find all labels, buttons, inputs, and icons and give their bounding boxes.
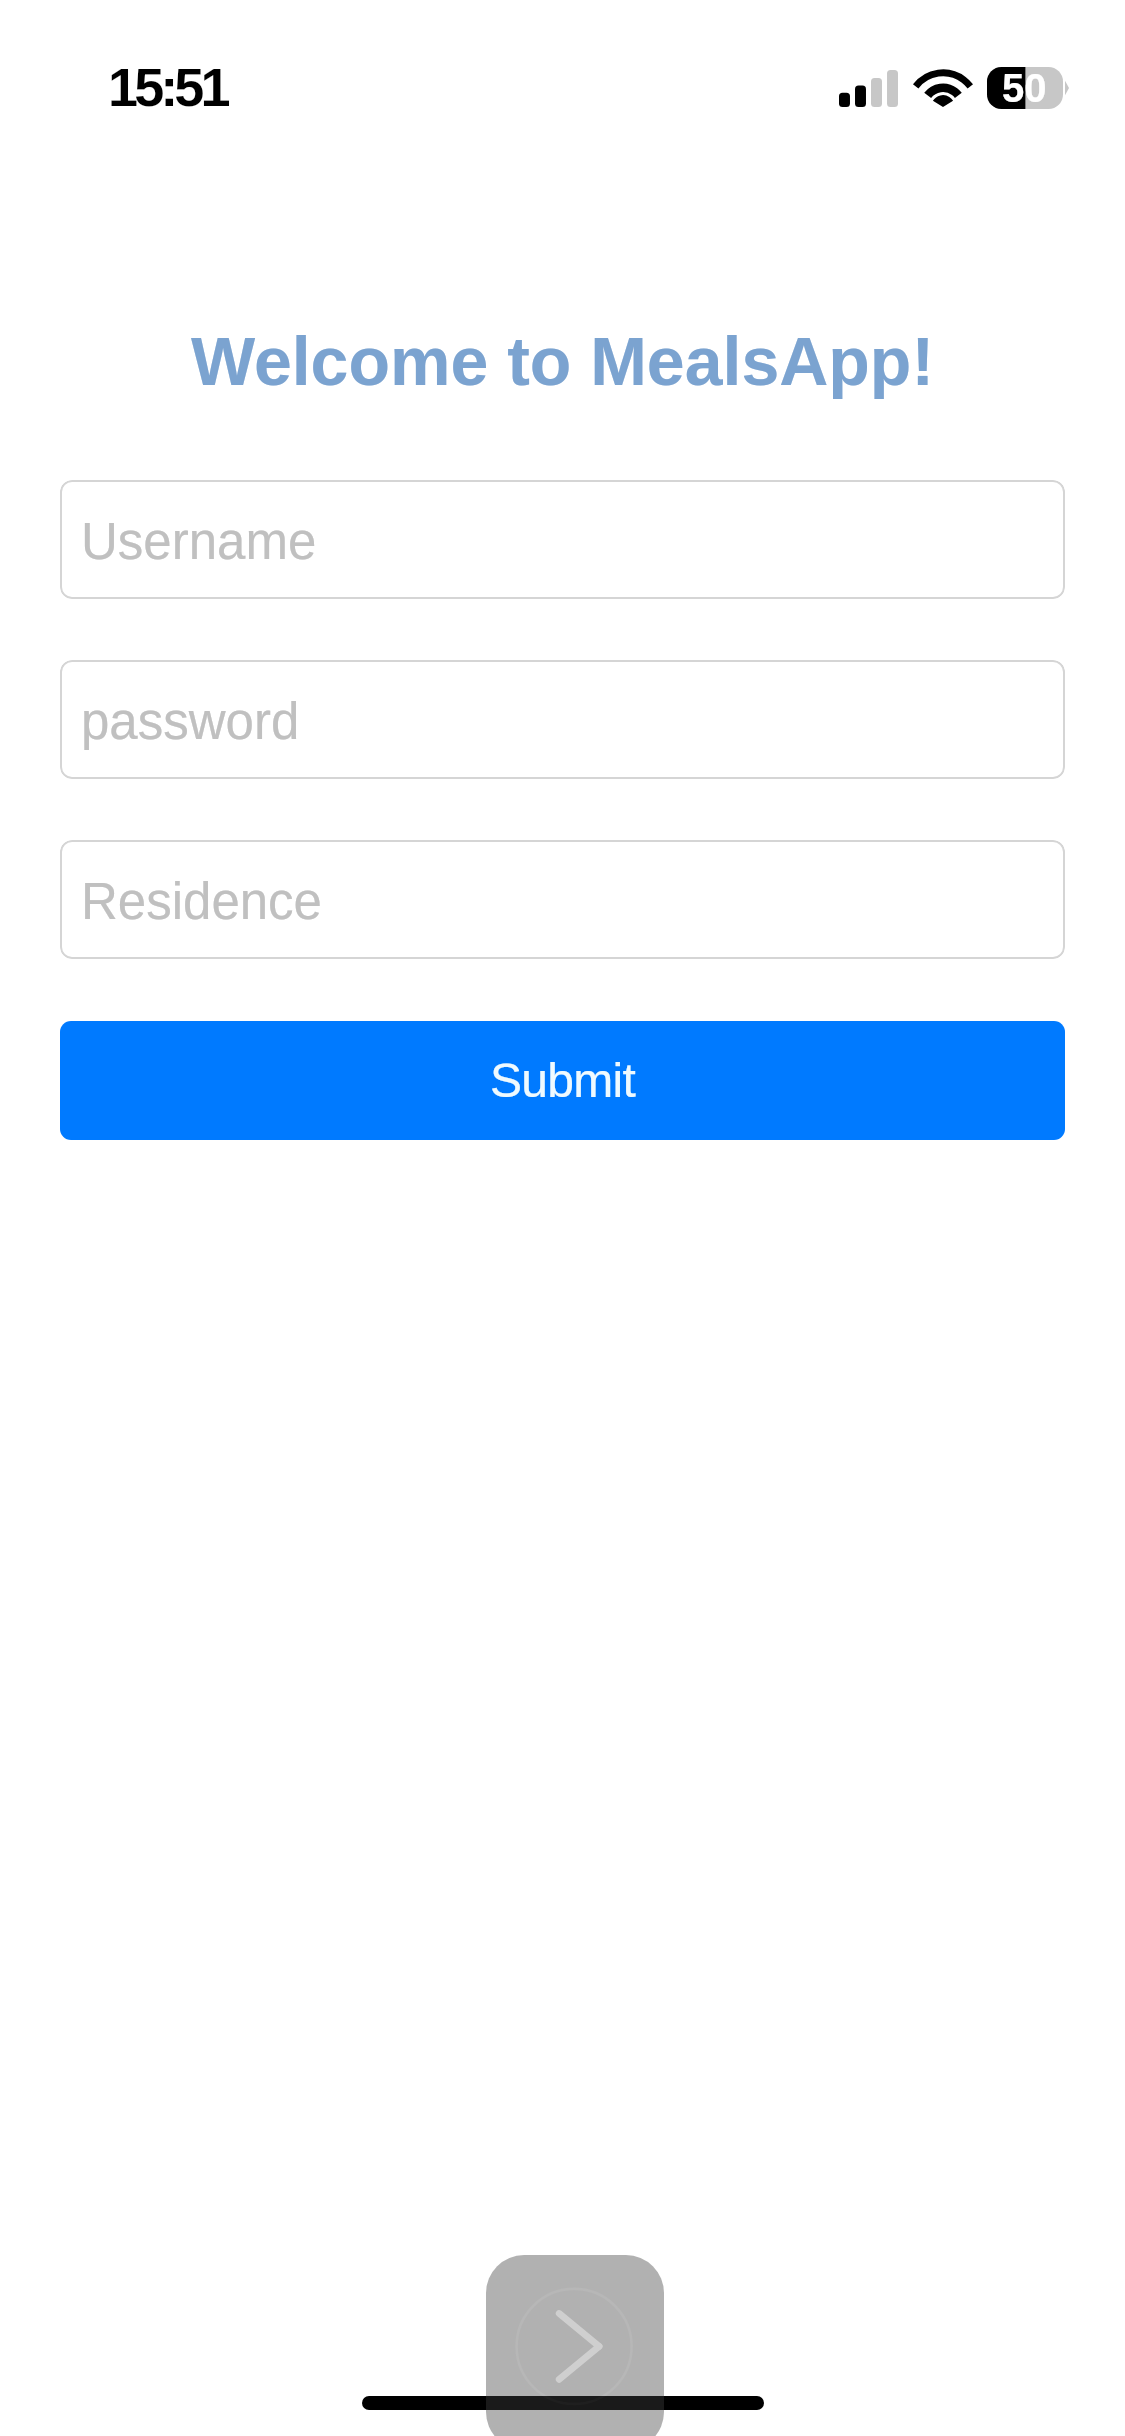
staticText: Residence [81, 873, 322, 930]
staticText: Submit [490, 1054, 636, 1108]
button[interactable]: Username [60, 480, 1065, 599]
button[interactable]: Submit [60, 1021, 1065, 1140]
staticText: Welcome to MealsApp! [0, 323, 1125, 399]
button[interactable]: Residence [60, 840, 1065, 959]
button[interactable]: password [60, 660, 1065, 779]
staticText: 15:51 [108, 57, 227, 117]
staticText: Username [81, 513, 317, 570]
staticText: 50 [1002, 66, 1047, 111]
button[interactable]: Next [486, 2255, 664, 2436]
staticText: password [81, 693, 300, 750]
